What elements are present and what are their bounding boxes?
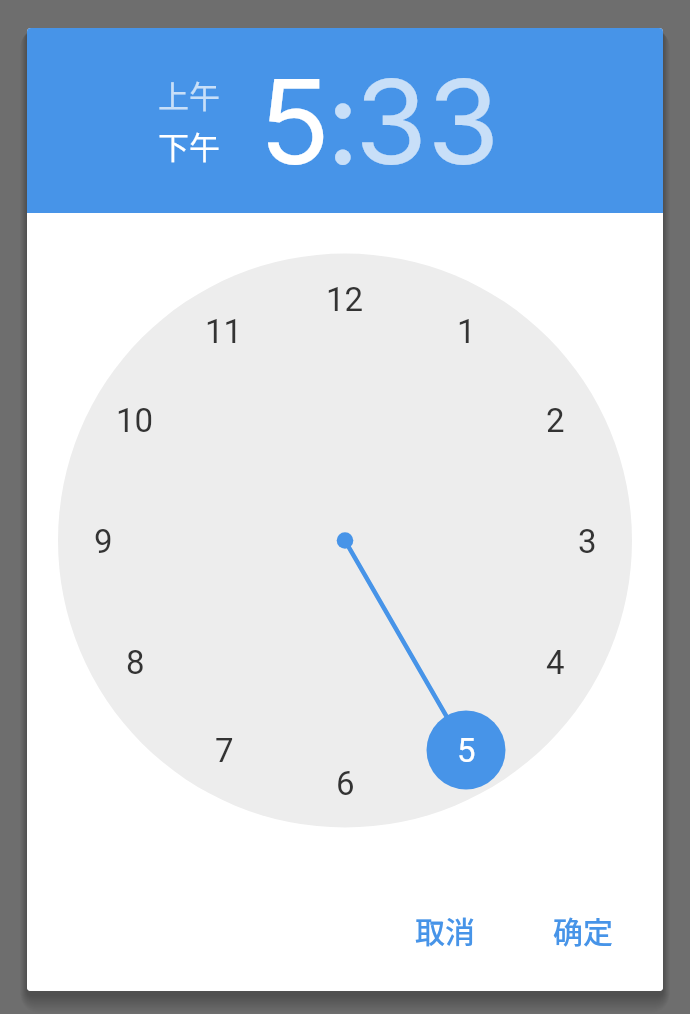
staticText: 6 xyxy=(336,764,355,803)
staticText: 5 xyxy=(457,731,476,770)
button[interactable]: 取消 xyxy=(375,893,515,965)
staticText: 上午 xyxy=(158,72,220,116)
button[interactable]: 上午 xyxy=(139,72,239,116)
staticText: : xyxy=(326,51,360,193)
staticText: 确定 xyxy=(553,908,613,951)
staticText: 33 xyxy=(355,51,500,193)
staticText: 11 xyxy=(205,312,243,351)
staticText: 2 xyxy=(546,401,565,440)
button[interactable]: 确定 xyxy=(513,893,653,965)
staticText: 1 xyxy=(457,312,476,351)
button[interactable]: 33 xyxy=(355,29,500,214)
button[interactable] xyxy=(27,213,663,991)
staticText: 下午 xyxy=(158,123,220,167)
staticText: 7 xyxy=(215,731,234,770)
staticText: 4 xyxy=(546,643,565,682)
staticText: 10 xyxy=(116,401,154,440)
staticText: 8 xyxy=(126,643,145,682)
staticText: 取消 xyxy=(415,908,475,951)
button[interactable]: 下午 xyxy=(139,123,239,167)
button[interactable]: 5 xyxy=(259,29,331,214)
staticText: 5 xyxy=(259,51,331,193)
staticText: 3 xyxy=(578,522,597,561)
staticText: 9 xyxy=(94,522,113,561)
staticText: 12 xyxy=(326,280,364,319)
